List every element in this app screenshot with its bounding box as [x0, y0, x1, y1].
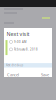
button[interactable]: Cancel [5, 72, 20, 78]
staticText: Next check-up [5, 64, 23, 67]
staticText: February 8, 2018 [14, 48, 38, 51]
staticText: 9:00 AM [14, 40, 26, 44]
staticText: Save [41, 72, 49, 77]
button[interactable]: Save [39, 72, 50, 78]
staticText: Cancel [7, 72, 19, 77]
staticText: Next visit [6, 30, 29, 38]
